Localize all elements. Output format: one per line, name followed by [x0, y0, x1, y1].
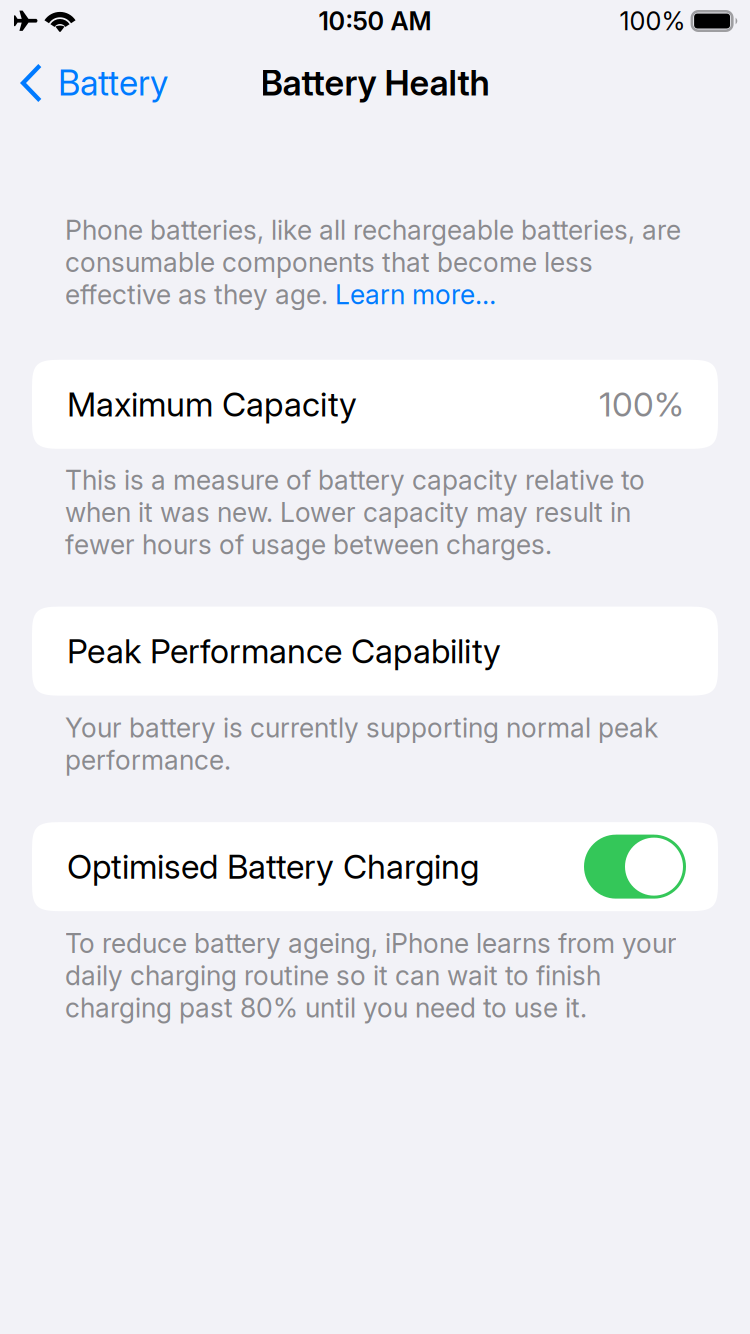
button[interactable]: Maximum Capacity [32, 360, 718, 449]
staticText: consumable components that become less [65, 246, 593, 279]
staticText: Optimised Battery Charging [67, 846, 479, 887]
button[interactable]: Learn more… [335, 278, 496, 311]
button[interactable]: Optimised Battery Charging [32, 822, 718, 911]
button[interactable]: Battery [0, 42, 260, 124]
staticText: Your battery is currently supporting nor… [65, 712, 658, 744]
staticText: 10:50 AM [318, 6, 431, 36]
staticText: charging past 80% until you need to use … [65, 992, 587, 1024]
staticText: Maximum Capacity [67, 384, 357, 424]
staticText: Learn more… [335, 278, 496, 311]
staticText: when it was new. Lower capacity may resu… [65, 496, 631, 528]
staticText: Battery Health [260, 62, 489, 104]
staticText: effective as they age. [65, 278, 335, 311]
staticText: Battery [58, 62, 168, 104]
staticText: 100% [620, 6, 686, 36]
staticText: This is a measure of battery capacity re… [65, 464, 645, 496]
staticText: Peak Performance Capability [67, 631, 501, 671]
staticText: performance. [65, 744, 231, 776]
button[interactable]: Peak Performance Capability [32, 607, 718, 696]
staticText: To reduce battery ageing, iPhone learns … [65, 927, 677, 959]
staticText: 100% [599, 384, 684, 424]
staticText: daily charging routine so it can wait to… [65, 959, 601, 992]
staticText: fewer hours of usage between charges. [65, 528, 552, 561]
staticText: Phone batteries, like all rechargeable b… [65, 214, 681, 246]
